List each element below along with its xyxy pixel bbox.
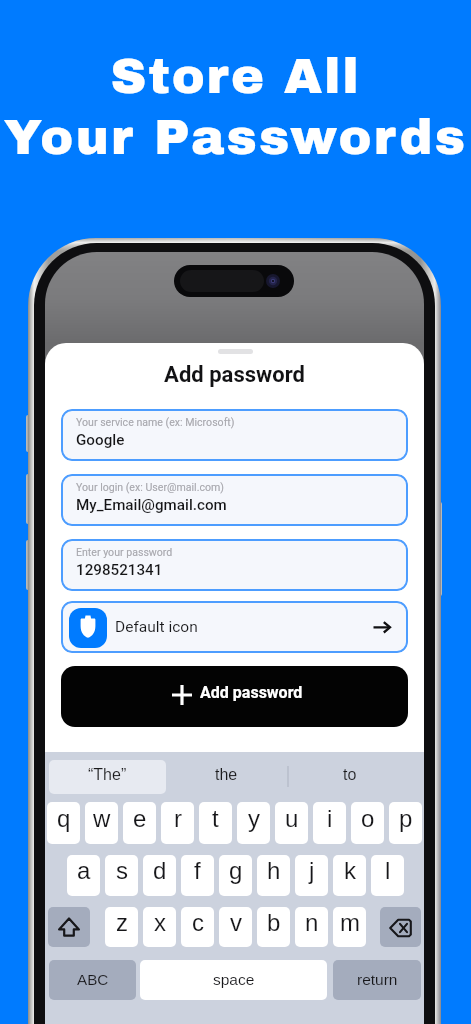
staticText: Your service name (ex: Microsoft) <box>76 416 235 428</box>
staticText: h <box>267 857 281 884</box>
staticText: space <box>213 971 255 988</box>
button[interactable]: the <box>165 760 288 794</box>
staticText: l <box>385 857 391 884</box>
button[interactable]: s <box>105 855 138 896</box>
button[interactable]: f <box>181 855 214 896</box>
button[interactable]: z <box>105 907 138 947</box>
button[interactable]: o <box>351 802 384 844</box>
button[interactable]: p <box>389 802 422 844</box>
button[interactable]: Shift <box>48 907 90 947</box>
button[interactable]: i <box>313 802 346 844</box>
button[interactable]: to <box>288 760 411 794</box>
staticText: g <box>229 857 243 884</box>
staticText: s <box>116 857 128 884</box>
button[interactable]: u <box>275 802 308 844</box>
staticText: q <box>57 805 71 832</box>
button[interactable]: h <box>257 855 290 896</box>
button[interactable]: e <box>123 802 156 844</box>
staticText: c <box>192 909 204 936</box>
staticText: m <box>340 909 360 936</box>
staticText: x <box>154 909 166 936</box>
staticText: u <box>285 805 299 832</box>
staticText: y <box>248 805 260 832</box>
staticText: k <box>344 857 356 884</box>
staticText: n <box>305 909 319 936</box>
staticText: return <box>357 971 398 988</box>
button[interactable]: b <box>257 907 290 947</box>
button[interactable]: space <box>140 960 327 1000</box>
staticText: ABC <box>77 971 109 988</box>
staticText: Add password <box>45 362 424 388</box>
button[interactable]: c <box>181 907 214 947</box>
staticText: w <box>93 805 111 832</box>
button[interactable]: j <box>295 855 328 896</box>
staticText: Store All <box>0 50 471 104</box>
staticText: z <box>116 909 128 936</box>
button[interactable]: Add password <box>61 666 408 727</box>
staticText: f <box>194 857 201 884</box>
button[interactable]: x <box>143 907 176 947</box>
button[interactable]: v <box>219 907 252 947</box>
staticText: v <box>230 909 242 936</box>
staticText: i <box>327 805 333 832</box>
button[interactable]: t <box>199 802 232 844</box>
other: Choose icon <box>373 616 393 638</box>
staticText: j <box>309 857 315 884</box>
staticText: b <box>267 909 281 936</box>
staticText: e <box>133 805 147 832</box>
staticText: Your login (ex: User@mail.com) <box>76 481 225 493</box>
button[interactable]: Enter your password <box>61 539 408 591</box>
button[interactable]: Backspace <box>380 907 421 947</box>
staticText: Enter your password <box>76 546 173 558</box>
button[interactable]: l <box>371 855 404 896</box>
button[interactable]: n <box>295 907 328 947</box>
staticText: r <box>174 805 182 832</box>
staticText: to <box>343 766 357 784</box>
staticText: “The” <box>88 766 127 784</box>
staticText: Google <box>76 431 125 449</box>
staticText: a <box>77 857 91 884</box>
button[interactable]: k <box>333 855 366 896</box>
button[interactable]: g <box>219 855 252 896</box>
button[interactable]: “The” <box>49 760 166 794</box>
button[interactable]: m <box>333 907 366 947</box>
button[interactable]: r <box>161 802 194 844</box>
button[interactable]: ABC <box>49 960 136 1000</box>
button[interactable]: y <box>237 802 270 844</box>
button[interactable]: Your login (ex: User@mail.com) <box>61 474 408 526</box>
staticText: Your Passwords <box>0 111 471 165</box>
button[interactable]: return <box>333 960 421 1000</box>
staticText: Add password <box>200 683 303 702</box>
staticText: Default icon <box>115 618 198 636</box>
staticText: d <box>153 857 167 884</box>
button[interactable]: w <box>85 802 118 844</box>
button[interactable]: Your service name (ex: Microsoft) <box>61 409 408 461</box>
staticText: p <box>399 805 413 832</box>
staticText: the <box>215 766 238 784</box>
button[interactable]: Default icon <box>61 601 408 653</box>
staticText: t <box>212 805 219 832</box>
button[interactable]: d <box>143 855 176 896</box>
button[interactable]: a <box>67 855 100 896</box>
button[interactable]: q <box>47 802 80 844</box>
staticText: My_Email@gmail.com <box>76 496 227 514</box>
staticText: 1298521341 <box>76 561 163 579</box>
staticText: o <box>361 805 375 832</box>
